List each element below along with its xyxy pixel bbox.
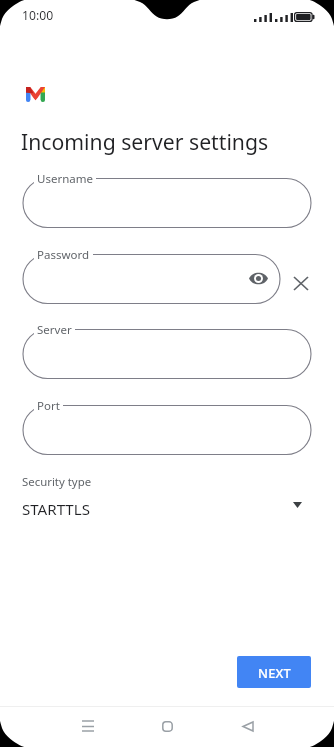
staticText: Server — [37, 322, 72, 338]
staticText: STARTTLS — [22, 499, 90, 520]
staticText: Security type — [22, 474, 92, 490]
button[interactable]: Password — [23, 244, 280, 304]
staticText: Port — [37, 398, 60, 414]
button[interactable]: Clear — [289, 271, 313, 295]
button[interactable]: Show password — [246, 266, 270, 290]
button[interactable]: Recent apps — [67, 706, 108, 747]
button[interactable]: Port — [23, 395, 311, 455]
staticText: Username — [37, 171, 93, 187]
staticText: NEXT — [258, 664, 291, 681]
button[interactable]: Security type — [21, 470, 312, 524]
button[interactable]: Username — [23, 168, 311, 228]
staticText: Password — [37, 247, 90, 263]
button[interactable]: NEXT — [237, 656, 311, 688]
staticText: Incoming server settings — [21, 127, 269, 156]
staticText: 10:00 — [22, 7, 54, 24]
button[interactable]: Server — [23, 319, 311, 379]
button[interactable]: Back — [227, 706, 268, 747]
button[interactable]: Home — [147, 706, 188, 747]
